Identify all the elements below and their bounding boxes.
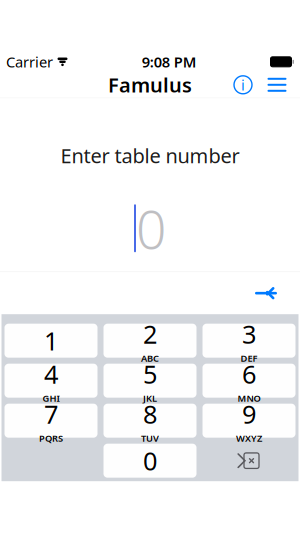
staticText: i: [241, 75, 245, 95]
staticText: DEF: [240, 352, 257, 364]
button[interactable]: 5: [103, 364, 196, 398]
button[interactable]: Continue: [244, 272, 288, 314]
staticText: TUV: [141, 432, 159, 444]
button[interactable]: 1: [4, 324, 97, 358]
button[interactable]: Menu: [260, 72, 294, 98]
staticText: Famulus: [108, 71, 192, 98]
staticText: Enter table number: [60, 142, 239, 169]
staticText: 1: [44, 324, 58, 357]
staticText: 8: [143, 397, 157, 431]
staticText: 6: [242, 357, 256, 391]
staticText: 4: [44, 357, 58, 391]
staticText: 3: [242, 317, 256, 351]
staticText: JKL: [143, 392, 157, 404]
staticText: Carrier: [6, 52, 53, 72]
staticText: 5: [143, 357, 157, 391]
staticText: PQRS: [39, 432, 63, 444]
button[interactable]: 3: [202, 324, 295, 358]
button[interactable]: 6: [202, 364, 295, 398]
staticText: GHI: [42, 392, 59, 404]
staticText: WXYZ: [236, 432, 262, 444]
button[interactable]: 8: [103, 404, 196, 438]
staticText: 9: [242, 397, 256, 431]
staticText: 2: [143, 317, 157, 351]
button[interactable]: 4: [4, 364, 97, 398]
button[interactable]: 7: [4, 404, 97, 438]
button[interactable]: Information: [226, 72, 260, 98]
button[interactable]: 9: [202, 404, 295, 438]
button[interactable]: 2: [103, 324, 196, 358]
staticText: 0: [143, 444, 157, 477]
staticText: ABC: [141, 352, 159, 364]
button[interactable]: Delete: [202, 444, 295, 478]
staticText: 7: [44, 397, 58, 431]
staticText: 9:08 PM: [142, 52, 197, 72]
staticText: 0: [136, 193, 166, 264]
staticText: MNO: [237, 392, 260, 404]
button[interactable]: 0: [103, 444, 196, 478]
